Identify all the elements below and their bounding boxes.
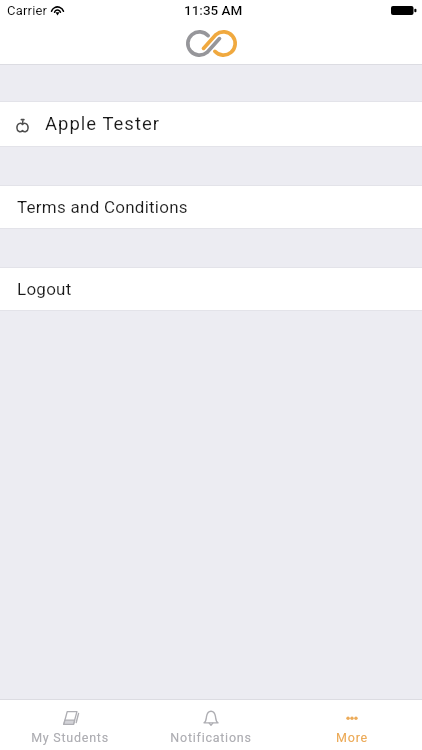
staticText: Logout xyxy=(17,279,72,299)
staticText: Notifications xyxy=(170,730,252,745)
other: Battery full xyxy=(391,6,416,15)
staticText: My Students xyxy=(31,730,109,745)
button[interactable]: Notifications xyxy=(140,700,281,750)
staticText: Terms and Conditions xyxy=(17,197,188,217)
staticText: Carrier xyxy=(7,3,48,18)
staticText: More xyxy=(336,730,368,745)
button[interactable]: Logout xyxy=(0,267,422,311)
button[interactable]: Apple Tester xyxy=(0,101,422,147)
button[interactable]: My Students xyxy=(0,700,140,750)
other: App logo xyxy=(186,30,237,57)
button[interactable]: Terms and Conditions xyxy=(0,185,422,229)
staticText: 11:35 AM xyxy=(184,2,243,18)
button[interactable]: More xyxy=(281,700,422,750)
staticText: Apple Tester xyxy=(45,113,161,135)
other: Wi-Fi signal xyxy=(51,5,64,15)
